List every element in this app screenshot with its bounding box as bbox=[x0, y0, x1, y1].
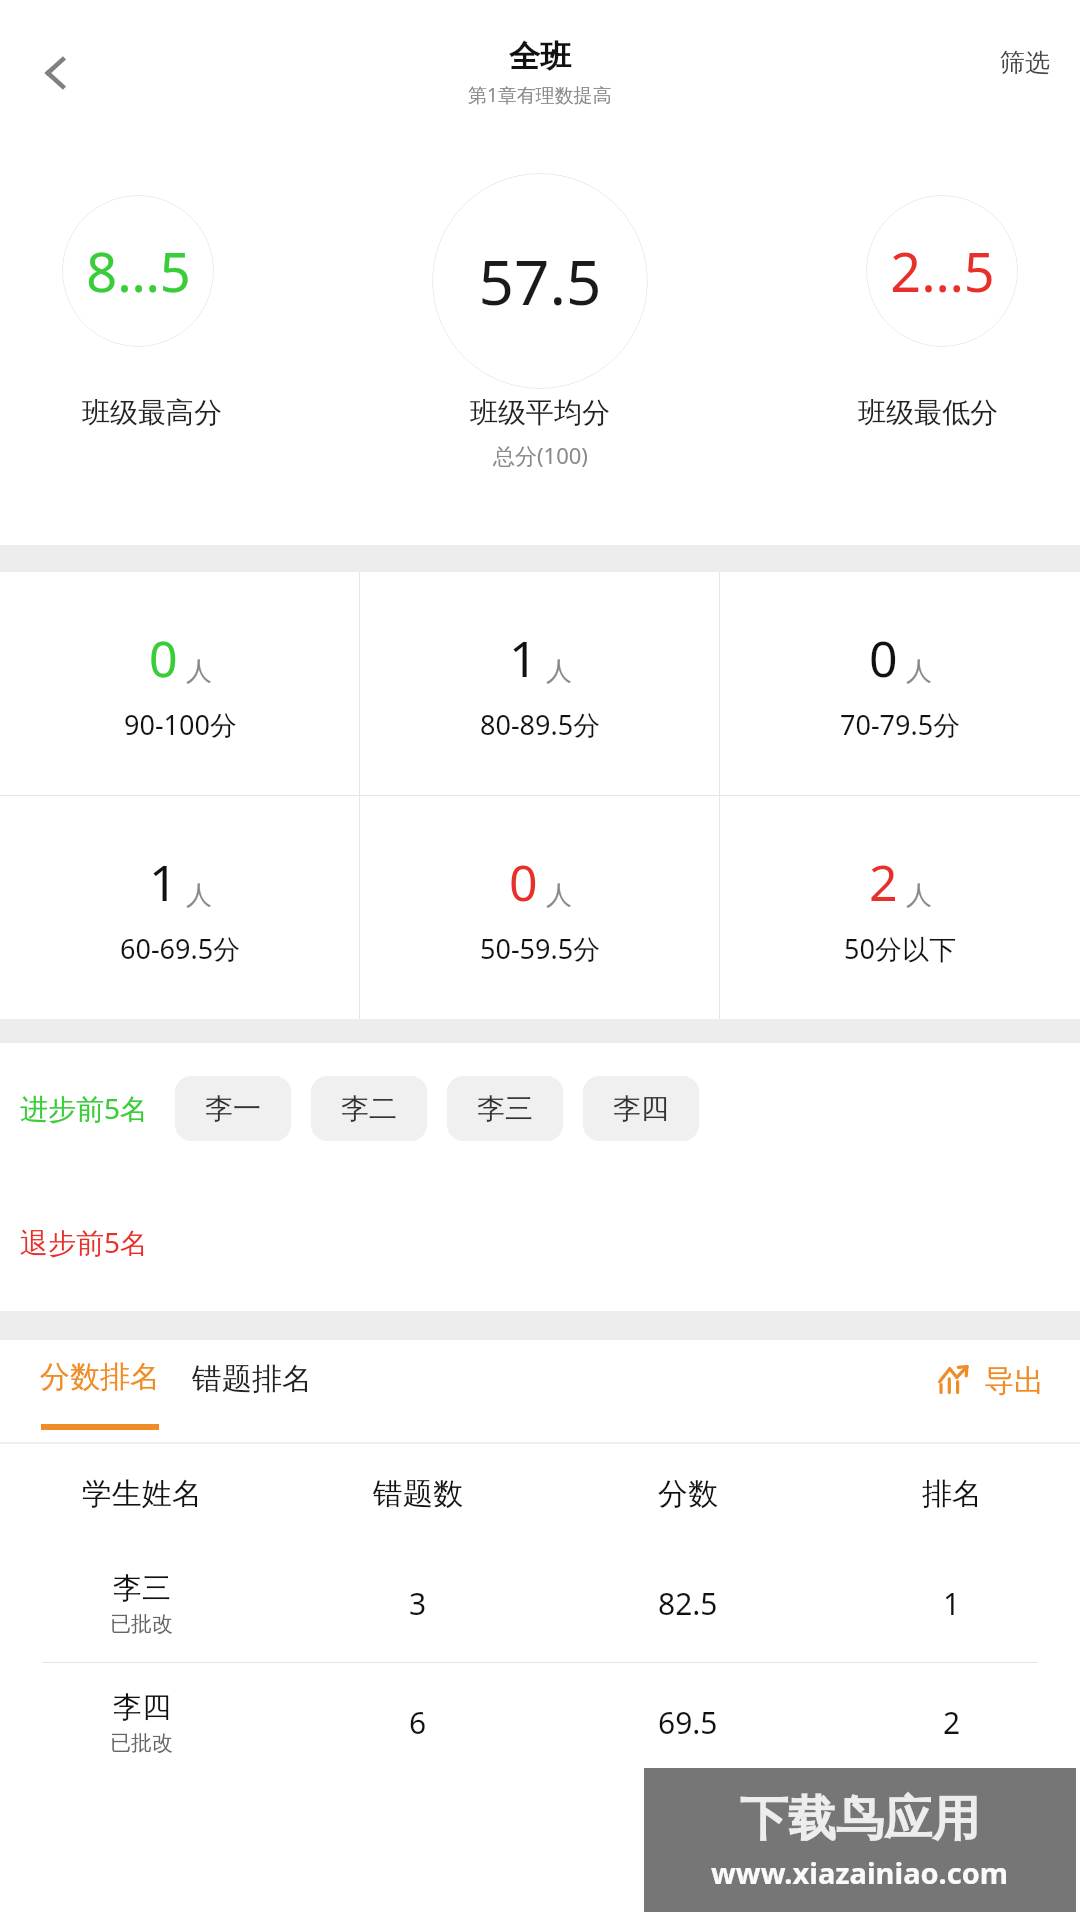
staticText: 下载鸟应用 bbox=[740, 1789, 980, 1849]
staticText: 错题数 bbox=[373, 1475, 463, 1513]
button[interactable]: 分数排名 bbox=[40, 1358, 160, 1396]
staticText: 0 bbox=[509, 848, 538, 916]
button[interactable]: 筛选 bbox=[970, 35, 1080, 90]
staticText: 班级最高分 bbox=[82, 395, 222, 430]
staticText: 人 bbox=[186, 879, 212, 912]
button[interactable]: 57.5 bbox=[432, 173, 648, 389]
staticText: 57.5 bbox=[478, 239, 602, 323]
button[interactable]: 李四 bbox=[0, 1663, 1080, 1781]
staticText: 人 bbox=[186, 655, 212, 688]
staticText: 李三 bbox=[477, 1091, 533, 1126]
staticText: 2 bbox=[943, 1702, 961, 1743]
staticText: 分数排名 bbox=[40, 1358, 160, 1396]
button[interactable]: 0 bbox=[0, 572, 360, 795]
staticText: 2 bbox=[869, 848, 898, 916]
staticText: 1 bbox=[943, 1583, 961, 1624]
button[interactable]: 0 bbox=[720, 572, 1080, 795]
staticText: 错题排名 bbox=[192, 1360, 312, 1398]
staticText: 50分以下 bbox=[844, 930, 956, 967]
staticText: www.xiazainiao.com bbox=[711, 1853, 1009, 1892]
staticText: 70-79.5分 bbox=[840, 706, 961, 743]
staticText: 李一 bbox=[205, 1091, 261, 1126]
staticText: 李四 bbox=[613, 1091, 669, 1126]
staticText: 筛选 bbox=[1000, 47, 1050, 78]
button[interactable]: 导出 bbox=[930, 1356, 1050, 1406]
staticText: 3 bbox=[409, 1583, 427, 1624]
button[interactable]: 李三 bbox=[447, 1076, 563, 1141]
staticText: 学生姓名 bbox=[82, 1475, 202, 1513]
button[interactable]: Back bbox=[22, 39, 90, 107]
staticText: 8…5 bbox=[86, 234, 191, 308]
button[interactable]: 李一 bbox=[175, 1076, 291, 1141]
staticText: 人 bbox=[546, 879, 572, 912]
staticText: 分数 bbox=[658, 1475, 718, 1513]
staticText: 1 bbox=[509, 624, 538, 692]
staticText: 李四 bbox=[113, 1689, 171, 1726]
staticText: 50-59.5分 bbox=[480, 930, 601, 967]
button[interactable]: 0 bbox=[360, 796, 720, 1019]
staticText: 排名 bbox=[922, 1475, 982, 1513]
staticText: 1 bbox=[149, 848, 178, 916]
staticText: 0 bbox=[149, 624, 178, 692]
staticText: 人 bbox=[546, 655, 572, 688]
staticText: 第1章有理数提高 bbox=[468, 82, 612, 108]
staticText: 2…5 bbox=[890, 234, 995, 308]
staticText: 总分(100) bbox=[493, 440, 588, 470]
staticText: 班级最低分 bbox=[858, 395, 998, 430]
button[interactable]: 错题排名 bbox=[192, 1358, 312, 1398]
button[interactable]: 2…5 bbox=[866, 195, 1018, 347]
staticText: 60-69.5分 bbox=[120, 930, 241, 967]
staticText: 6 bbox=[409, 1702, 427, 1743]
button[interactable]: 李四 bbox=[583, 1076, 699, 1141]
staticText: 82.5 bbox=[658, 1583, 718, 1624]
staticText: 李三 bbox=[113, 1570, 171, 1607]
staticText: 已批改 bbox=[110, 1730, 173, 1756]
button[interactable]: 2 bbox=[720, 796, 1080, 1019]
staticText: 班级平均分 bbox=[470, 395, 610, 430]
staticText: 80-89.5分 bbox=[480, 706, 601, 743]
staticText: 0 bbox=[869, 624, 898, 692]
button[interactable]: 8…5 bbox=[62, 195, 214, 347]
staticText: 人 bbox=[906, 879, 932, 912]
button[interactable]: 1 bbox=[0, 796, 360, 1019]
staticText: 退步前5名 bbox=[20, 1223, 149, 1261]
staticText: 90-100分 bbox=[124, 706, 237, 743]
staticText: 进步前5名 bbox=[20, 1089, 149, 1127]
button[interactable]: 李三 bbox=[0, 1544, 1080, 1662]
button[interactable]: 李二 bbox=[311, 1076, 427, 1141]
staticText: 李二 bbox=[341, 1091, 397, 1126]
button[interactable]: 1 bbox=[360, 572, 720, 795]
staticText: 全班 bbox=[509, 37, 571, 76]
staticText: 导出 bbox=[984, 1362, 1044, 1400]
staticText: 已批改 bbox=[110, 1611, 173, 1637]
staticText: 69.5 bbox=[658, 1702, 718, 1743]
staticText: 人 bbox=[906, 655, 932, 688]
